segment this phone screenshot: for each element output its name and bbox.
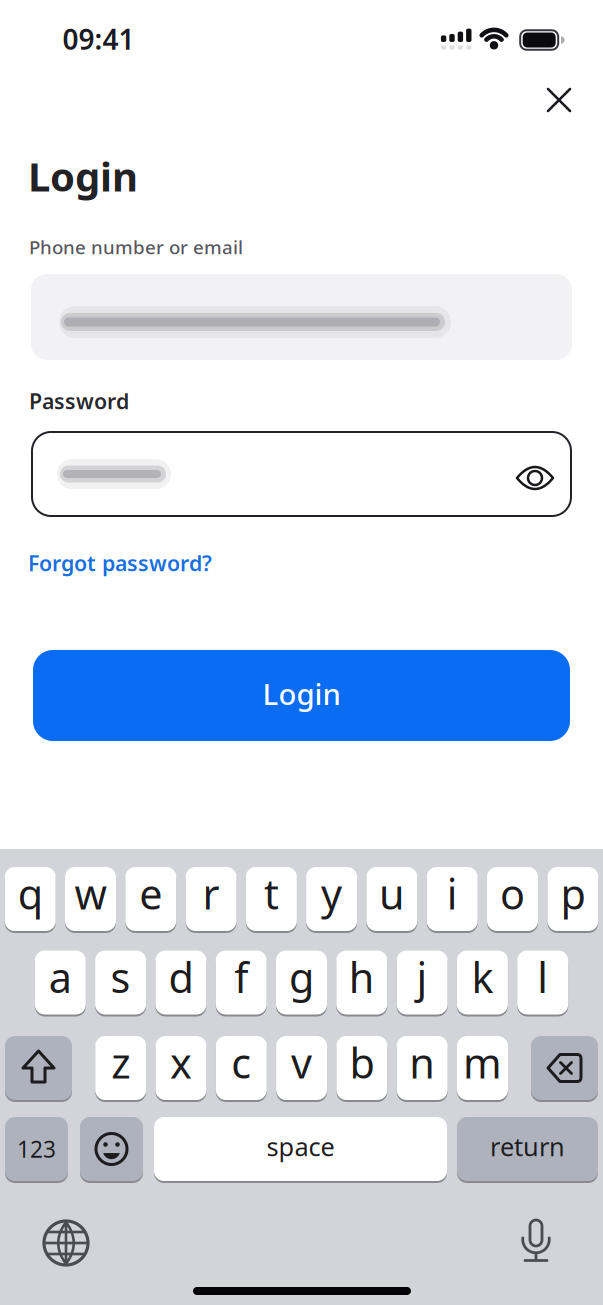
- button[interactable]: f: [216, 950, 267, 1014]
- staticText: r: [203, 866, 220, 921]
- staticText: v: [291, 1035, 312, 1090]
- button[interactable]: space: [154, 1117, 447, 1181]
- button[interactable]: y: [306, 867, 357, 931]
- staticText: Password: [29, 387, 129, 415]
- staticText: y: [321, 866, 342, 921]
- staticText: x: [170, 1035, 192, 1090]
- button[interactable]: return: [457, 1117, 598, 1181]
- button[interactable]: 123: [5, 1117, 68, 1181]
- button[interactable]: m: [457, 1036, 508, 1100]
- staticText: n: [409, 1035, 435, 1090]
- staticText: p: [560, 866, 585, 921]
- staticText: Forgot password?: [28, 549, 212, 577]
- button[interactable]: c: [216, 1036, 267, 1100]
- staticText: Login: [262, 674, 340, 713]
- staticText: space: [266, 1130, 334, 1163]
- staticText: w: [74, 866, 106, 921]
- staticText: b: [349, 1035, 374, 1090]
- button[interactable]: s: [95, 950, 146, 1014]
- button[interactable]: o: [487, 867, 538, 931]
- staticText: z: [111, 1035, 130, 1090]
- button[interactable]: x: [155, 1036, 206, 1100]
- button[interactable]: Forgot password?: [28, 549, 212, 577]
- button[interactable]: p: [547, 867, 598, 931]
- button[interactable]: k: [457, 950, 508, 1014]
- staticText: t: [264, 866, 279, 921]
- button[interactable]: q: [5, 867, 56, 931]
- button[interactable]: b: [336, 1036, 387, 1100]
- staticText: 09:41: [62, 20, 134, 58]
- button[interactable]: [5, 1036, 72, 1100]
- staticText: q: [18, 866, 43, 921]
- button[interactable]: u: [366, 867, 417, 931]
- staticText: f: [234, 950, 248, 1004]
- staticText: s: [111, 950, 131, 1004]
- staticText: d: [168, 950, 193, 1004]
- staticText: return: [490, 1130, 565, 1163]
- button[interactable]: n: [397, 1036, 448, 1100]
- button[interactable]: Login: [33, 650, 570, 741]
- button[interactable]: [80, 1117, 143, 1181]
- button[interactable]: t: [246, 867, 297, 931]
- staticText: l: [537, 950, 548, 1004]
- button[interactable]: a: [35, 950, 86, 1014]
- staticText: Phone number or email: [29, 235, 243, 259]
- staticText: e: [139, 866, 162, 921]
- staticText: u: [379, 866, 405, 921]
- staticText: i: [447, 866, 458, 921]
- button[interactable]: j: [397, 950, 448, 1014]
- staticText: 123: [17, 1134, 56, 1164]
- button[interactable]: w: [65, 867, 116, 931]
- button[interactable]: [31, 274, 572, 360]
- staticText: k: [471, 950, 493, 1004]
- staticText: j: [417, 950, 428, 1004]
- staticText: o: [500, 866, 525, 921]
- button[interactable]: [531, 1036, 598, 1100]
- button[interactable]: r: [186, 867, 237, 931]
- staticText: g: [289, 950, 314, 1004]
- staticText: c: [231, 1035, 251, 1090]
- button[interactable]: e: [125, 867, 176, 931]
- staticText: Login: [28, 149, 138, 202]
- button[interactable]: [42, 1219, 90, 1267]
- button[interactable]: [537, 78, 581, 122]
- button[interactable]: v: [276, 1036, 327, 1100]
- button[interactable]: g: [276, 950, 327, 1014]
- button[interactable]: d: [155, 950, 206, 1014]
- button[interactable]: [512, 1219, 560, 1267]
- staticText: a: [49, 950, 72, 1004]
- button[interactable]: l: [517, 950, 568, 1014]
- button[interactable]: z: [95, 1036, 146, 1100]
- button[interactable]: h: [336, 950, 387, 1014]
- staticText: m: [463, 1035, 502, 1090]
- button[interactable]: i: [427, 867, 478, 931]
- staticText: h: [349, 950, 375, 1004]
- button[interactable]: [31, 431, 572, 517]
